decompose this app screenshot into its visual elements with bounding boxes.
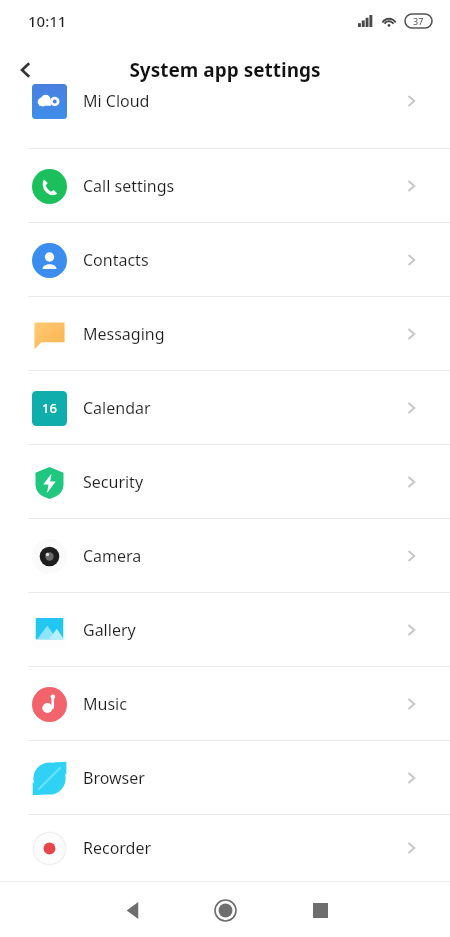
staticText: Mi Cloud bbox=[83, 90, 150, 112]
button[interactable]: Back bbox=[108, 885, 158, 935]
staticText: Recorder bbox=[83, 837, 152, 859]
staticText: Messaging bbox=[83, 323, 165, 345]
button[interactable]: Contacts bbox=[0, 223, 450, 296]
button[interactable]: Recorder bbox=[0, 815, 450, 881]
button[interactable]: Call settings bbox=[0, 149, 450, 222]
staticText: Security bbox=[83, 471, 144, 493]
staticText: Browser bbox=[83, 767, 145, 789]
button[interactable]: 16 bbox=[0, 371, 450, 444]
staticText: Camera bbox=[83, 545, 142, 567]
staticText: Music bbox=[83, 693, 127, 715]
staticText: 10:11 bbox=[28, 11, 67, 31]
button[interactable]: Home bbox=[200, 885, 250, 935]
button[interactable]: Back bbox=[0, 44, 52, 96]
staticText: Gallery bbox=[83, 619, 136, 641]
button[interactable]: Recents bbox=[295, 885, 345, 935]
button[interactable]: Music bbox=[0, 667, 450, 740]
staticText: 16 bbox=[42, 399, 57, 417]
button[interactable]: Camera bbox=[0, 519, 450, 592]
button[interactable]: Gallery bbox=[0, 593, 450, 666]
button[interactable]: Browser bbox=[0, 741, 450, 814]
staticText: System app settings bbox=[129, 57, 321, 83]
staticText: Contacts bbox=[83, 249, 149, 271]
staticText: Calendar bbox=[83, 397, 151, 419]
staticText: 37 bbox=[413, 15, 424, 27]
button[interactable]: Security bbox=[0, 445, 450, 518]
staticText: Call settings bbox=[83, 175, 175, 197]
button[interactable]: Messaging bbox=[0, 297, 450, 370]
button[interactable]: Mi Cloud bbox=[0, 97, 450, 148]
